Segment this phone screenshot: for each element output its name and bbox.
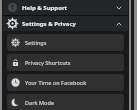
other: Collapse — [115, 20, 123, 28]
other: Expand — [115, 4, 123, 12]
button[interactable]: Dark Mode — [7, 94, 124, 110]
button[interactable]: Privacy Shortcuts — [7, 54, 124, 71]
staticText: Privacy Shortcuts — [25, 59, 71, 66]
staticText: Dark Mode — [25, 99, 54, 106]
button[interactable]: Help & Support — [3, 0, 128, 15]
staticText: Settings — [25, 39, 47, 46]
button[interactable]: Settings & Privacy — [3, 16, 128, 31]
staticText: Settings & Privacy — [22, 20, 115, 28]
button[interactable]: Your Time on Facebook — [7, 74, 124, 91]
staticText: Help & Support — [22, 4, 115, 12]
staticText: Your Time on Facebook — [25, 79, 87, 86]
button[interactable]: Settings — [7, 34, 124, 51]
